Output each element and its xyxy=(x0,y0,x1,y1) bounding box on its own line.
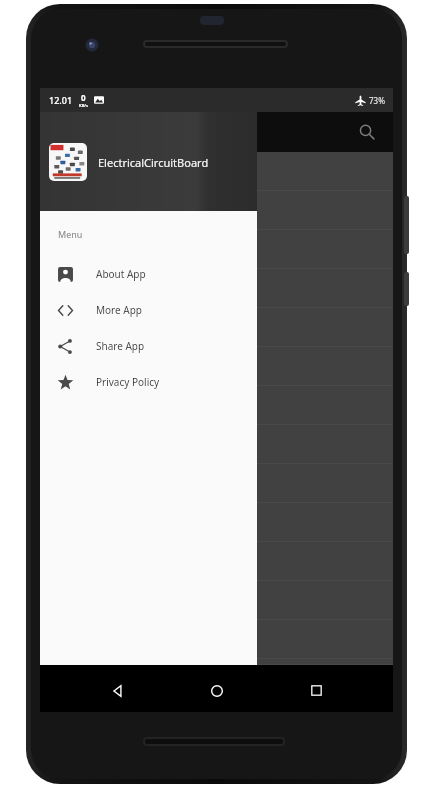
staticText: Share App xyxy=(96,339,145,353)
button[interactable] xyxy=(40,230,393,269)
button[interactable] xyxy=(40,386,393,425)
button[interactable]: Recent apps xyxy=(293,669,339,712)
staticText: More App xyxy=(96,303,142,317)
staticText: Menu xyxy=(58,228,83,240)
button[interactable]: Back xyxy=(94,669,140,712)
button[interactable] xyxy=(40,425,393,464)
button[interactable] xyxy=(40,347,393,386)
button[interactable]: Search xyxy=(351,116,383,148)
staticText: 0 xyxy=(81,92,86,103)
button[interactable] xyxy=(40,503,393,542)
button[interactable] xyxy=(40,659,393,665)
button[interactable] xyxy=(40,308,393,347)
button[interactable] xyxy=(40,269,393,308)
button[interactable] xyxy=(40,581,393,620)
button[interactable]: Home xyxy=(194,669,240,712)
staticText: About App xyxy=(96,267,146,281)
staticText: Privacy Policy xyxy=(96,375,160,389)
button[interactable] xyxy=(40,620,393,659)
button[interactable] xyxy=(40,191,393,230)
staticText: 73% xyxy=(369,95,385,106)
button[interactable] xyxy=(40,542,393,581)
staticText: KB/s xyxy=(79,103,88,108)
button[interactable]: More App xyxy=(40,292,257,328)
button[interactable]: About App xyxy=(40,256,257,292)
button[interactable]: Share App xyxy=(40,328,257,364)
staticText: ElectricalCircuitBoard xyxy=(98,155,209,170)
button[interactable]: Privacy Policy xyxy=(40,364,257,400)
button[interactable] xyxy=(40,464,393,503)
staticText: 12.01 xyxy=(49,94,73,106)
button[interactable]: ElectricalCircuitBoard xyxy=(40,112,257,211)
button[interactable] xyxy=(40,152,393,191)
